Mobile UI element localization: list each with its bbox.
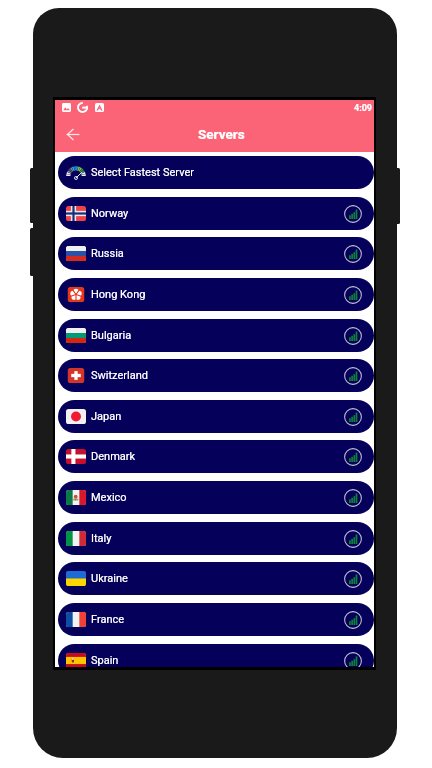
button[interactable]: Norway bbox=[58, 197, 374, 230]
button[interactable]: Italy bbox=[58, 522, 374, 555]
button[interactable]: France bbox=[58, 603, 374, 636]
staticText: France bbox=[91, 613, 125, 626]
staticText: 4:09 bbox=[354, 103, 373, 114]
button[interactable]: Switzerland bbox=[58, 359, 374, 392]
button[interactable]: Denmark bbox=[58, 440, 374, 473]
staticText: Hong Kong bbox=[91, 288, 146, 301]
button[interactable]: Bulgaria bbox=[58, 319, 374, 352]
button[interactable]: Hong Kong bbox=[58, 278, 374, 311]
button[interactable]: Japan bbox=[58, 400, 374, 433]
button[interactable]: Spain bbox=[58, 644, 374, 667]
staticText: Japan bbox=[91, 410, 122, 423]
button[interactable]: Select Fastest Server bbox=[58, 156, 374, 189]
button[interactable]: Back bbox=[61, 122, 85, 146]
staticText: Italy bbox=[91, 532, 112, 545]
staticText: Servers bbox=[198, 126, 245, 142]
button[interactable]: Mexico bbox=[58, 481, 374, 514]
staticText: Mexico bbox=[91, 491, 127, 504]
staticText: Norway bbox=[91, 207, 129, 220]
staticText: Ukraine bbox=[91, 572, 128, 585]
staticText: Russia bbox=[91, 247, 124, 260]
button[interactable]: Russia bbox=[58, 237, 374, 270]
staticText: Spain bbox=[91, 654, 119, 667]
staticText: Bulgaria bbox=[91, 329, 132, 342]
button[interactable]: Ukraine bbox=[58, 562, 374, 595]
staticText: Select Fastest Server bbox=[91, 166, 194, 179]
staticText: Switzerland bbox=[91, 369, 148, 382]
staticText: Denmark bbox=[91, 450, 136, 463]
